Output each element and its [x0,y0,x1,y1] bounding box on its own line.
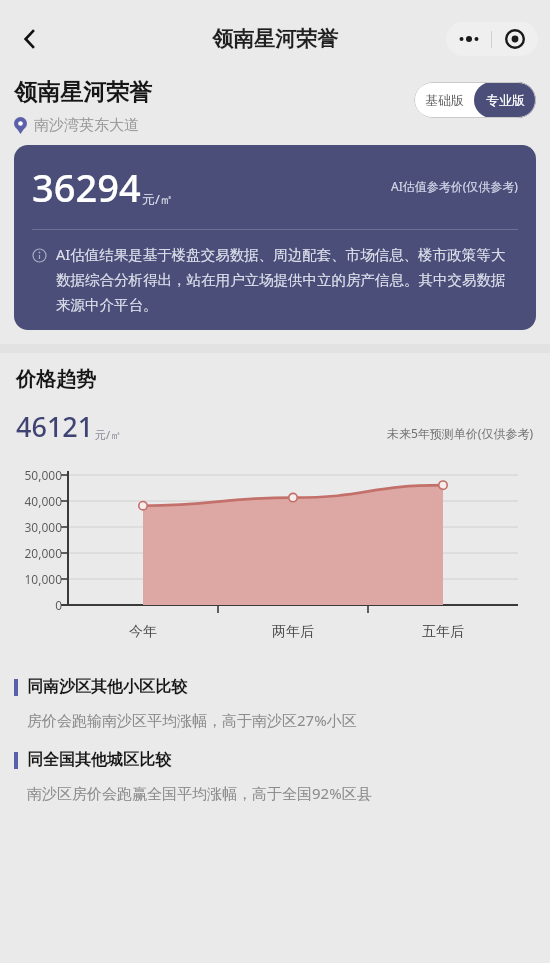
button[interactable]: 36294 [14,145,536,330]
button[interactable]: 专业版 [474,82,536,118]
staticText: 今年 [129,623,157,641]
staticText: 40,000 [4,493,62,509]
staticText: 领南星河荣誉 [212,26,338,52]
staticText: 10,000 [4,571,62,587]
staticText: 专业版 [486,92,525,108]
staticText: 46121 [16,408,94,445]
button[interactable]: 同南沙区其他小区比较 [0,669,550,736]
staticText: 同全国其他城区比较 [27,750,171,770]
staticText: 0 [4,597,62,613]
staticText: 50,000 [4,467,62,483]
staticText: 基础版 [425,92,464,108]
staticText: 五年后 [422,623,464,641]
staticText: 南沙区房价会跑赢全国平均涨幅，高于全国92%区县 [27,783,372,803]
staticText: 未来5年预测单价(仅供参考) [387,425,534,441]
staticText: 房价会跑输南沙区平均涨幅，高于南沙区27%小区 [27,710,357,730]
button[interactable]: Menu [446,22,538,56]
button[interactable]: 基础版 [414,82,474,118]
staticText: AI估值结果是基于楼盘交易数据、周边配套、市场信息、楼市政策等大数据综合分析得出… [56,244,518,314]
staticText: 价格趋势 [16,367,96,392]
staticText: 30,000 [4,519,62,535]
staticText: 南沙湾英东大道 [34,116,139,135]
button[interactable]: Back [6,15,54,63]
staticText: AI估值参考价(仅供参考) [391,178,518,194]
staticText: 36294 [32,161,141,213]
button[interactable]: 同全国其他城区比较 [0,742,550,809]
staticText: 元/㎡ [142,190,173,208]
staticText: 同南沙区其他小区比较 [27,677,187,697]
staticText: 两年后 [272,623,314,641]
staticText: 20,000 [4,545,62,561]
staticText: 领南星河荣誉 [14,78,152,107]
staticText: 元/㎡ [95,427,122,442]
